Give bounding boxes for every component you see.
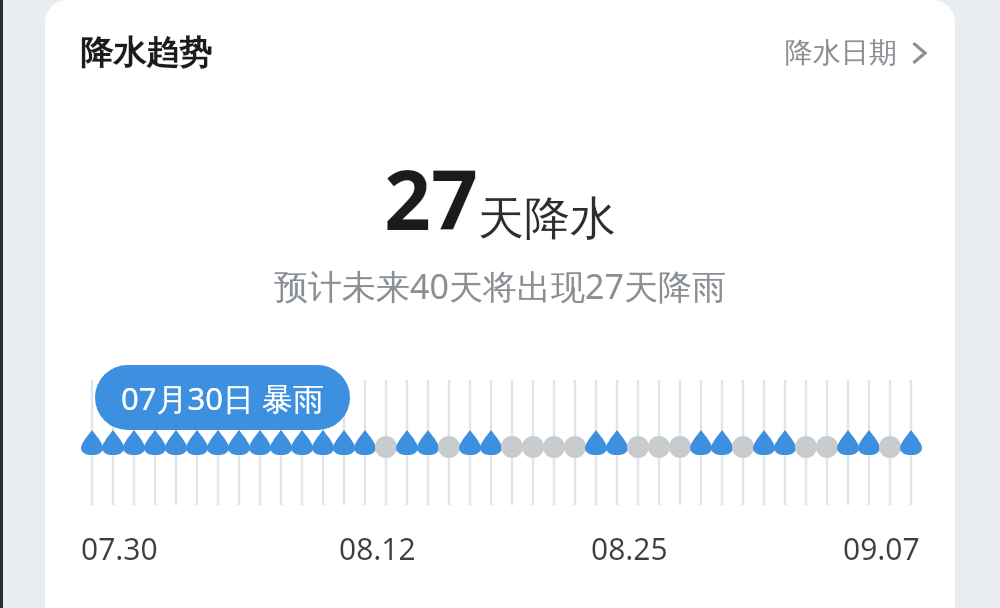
staticText: 07月30日 暴雨 xyxy=(121,377,324,419)
staticText: 08.25 xyxy=(591,528,668,569)
button[interactable]: 07月30日 暴雨 xyxy=(95,365,350,430)
staticText: 09.07 xyxy=(843,528,920,569)
staticText: 07.30 xyxy=(81,528,158,569)
staticText: 降水日期 xyxy=(785,35,897,70)
staticText: 08.12 xyxy=(339,528,416,569)
staticText: 27 xyxy=(384,142,478,254)
other: 查看降水日期 xyxy=(911,40,927,66)
staticText: 预计未来40天将出现27天降雨 xyxy=(45,263,955,309)
staticText: 降水趋势 xyxy=(80,32,212,74)
button[interactable]: 降水日期 xyxy=(775,27,955,78)
staticText: 天降水 xyxy=(478,190,616,248)
